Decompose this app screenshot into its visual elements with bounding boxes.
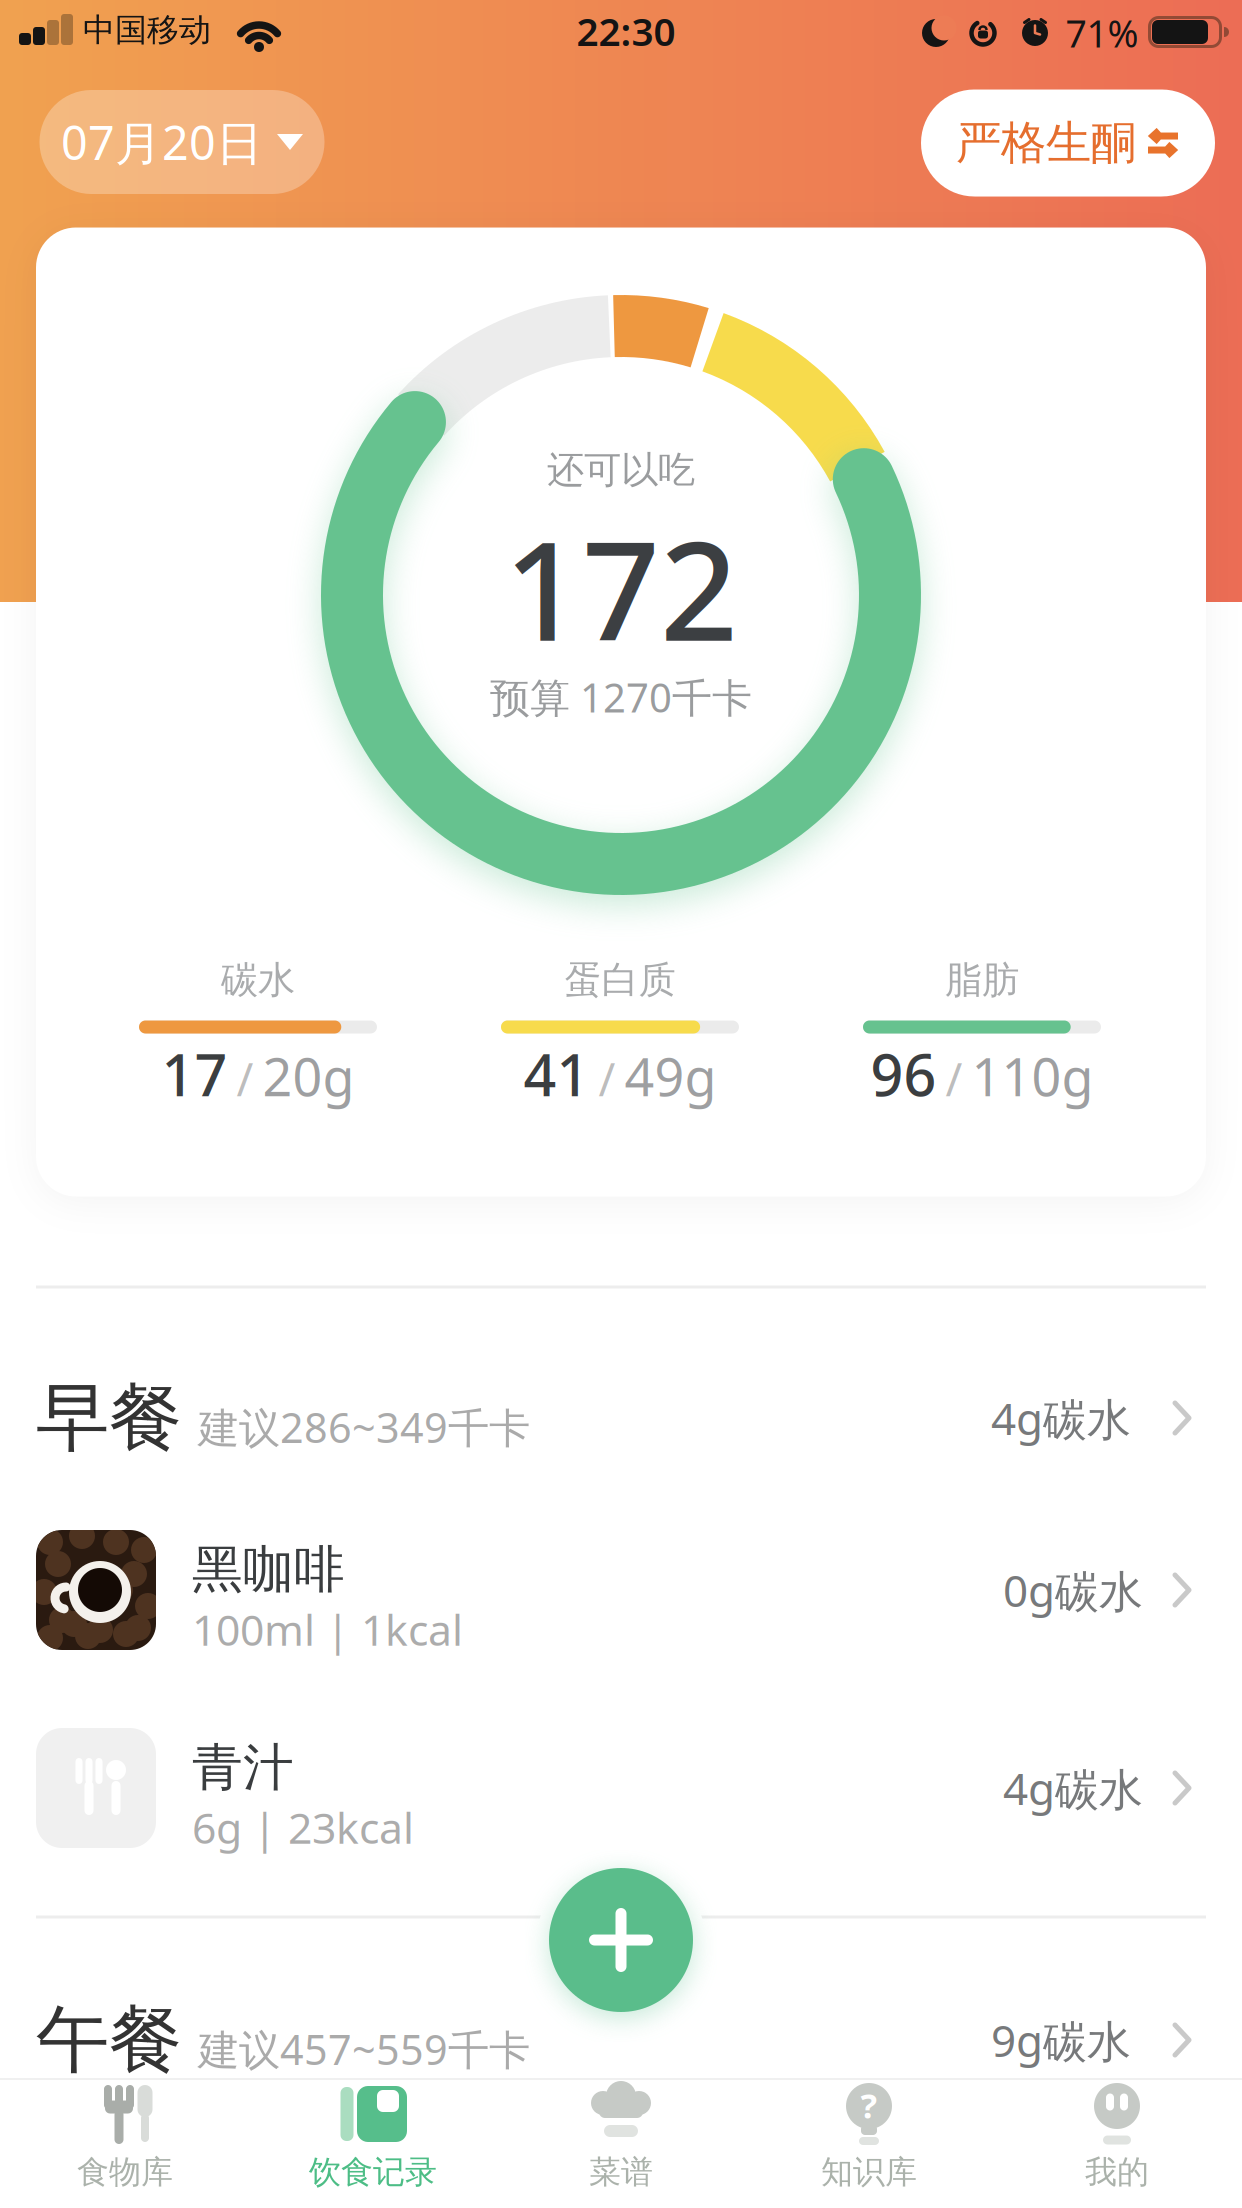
button[interactable]: ?	[745, 2078, 993, 2208]
staticText: 午餐	[36, 1995, 182, 2085]
staticText: 20g	[262, 1041, 354, 1111]
staticText: 110g	[971, 1041, 1093, 1111]
staticText: 17	[161, 1036, 227, 1112]
button[interactable]: 饮食记录	[249, 2078, 497, 2208]
staticText: 172	[504, 498, 738, 678]
staticText: 饮食记录	[309, 2152, 437, 2192]
staticText: 蛋白质	[564, 957, 675, 1003]
button[interactable]: 青汁	[36, 1728, 1206, 1848]
staticText: 49g	[624, 1041, 716, 1111]
button[interactable]: 07月20日	[39, 90, 324, 194]
button[interactable]: 黑咖啡	[36, 1530, 1206, 1650]
button[interactable]: 食物库	[1, 2078, 249, 2208]
button[interactable]: 我的	[993, 2078, 1241, 2208]
staticText: 黑咖啡	[192, 1539, 345, 1601]
staticText: 建议286~349千卡	[198, 1399, 530, 1454]
staticText: 71%	[1065, 8, 1138, 58]
button[interactable]: 早餐	[36, 1358, 1206, 1478]
staticText: 中国移动	[83, 10, 211, 50]
staticText: 预算 1270千卡	[490, 670, 752, 723]
staticText: 我的	[1085, 2152, 1149, 2192]
button[interactable]	[537, 1856, 705, 2024]
staticText: 22:30	[576, 5, 675, 57]
button[interactable]: 午餐	[36, 1980, 1206, 2100]
staticText: 脂肪	[945, 957, 1019, 1003]
staticText: 6g | 23kcal	[192, 1799, 414, 1855]
staticText: 还可以吃	[547, 447, 695, 493]
staticText: /	[236, 1049, 253, 1109]
staticText: 青汁	[192, 1737, 294, 1799]
staticText: 严格生酮	[956, 115, 1136, 171]
staticText: 9g碳水	[991, 2011, 1131, 2069]
staticText: 100ml | 1kcal	[192, 1601, 463, 1657]
button[interactable]: 严格生酮	[921, 89, 1215, 196]
staticText: /	[945, 1049, 962, 1109]
staticText: 碳水	[221, 957, 295, 1003]
staticText: 07月20日	[61, 111, 263, 173]
staticText: 4g碳水	[1003, 1759, 1143, 1817]
staticText: 食物库	[77, 2152, 173, 2192]
staticText: 知识库	[821, 2152, 917, 2192]
staticText: 0g碳水	[1003, 1561, 1143, 1619]
staticText: 4g碳水	[991, 1389, 1131, 1447]
staticText: /	[598, 1049, 615, 1109]
staticText: 建议457~559千卡	[198, 2021, 530, 2076]
button[interactable]: 菜谱	[497, 2078, 745, 2208]
staticText: 96	[870, 1036, 936, 1112]
staticText: 41	[523, 1036, 589, 1112]
staticText: ?	[860, 2082, 877, 2128]
staticText: 早餐	[36, 1373, 182, 1463]
staticText: 菜谱	[589, 2152, 653, 2192]
